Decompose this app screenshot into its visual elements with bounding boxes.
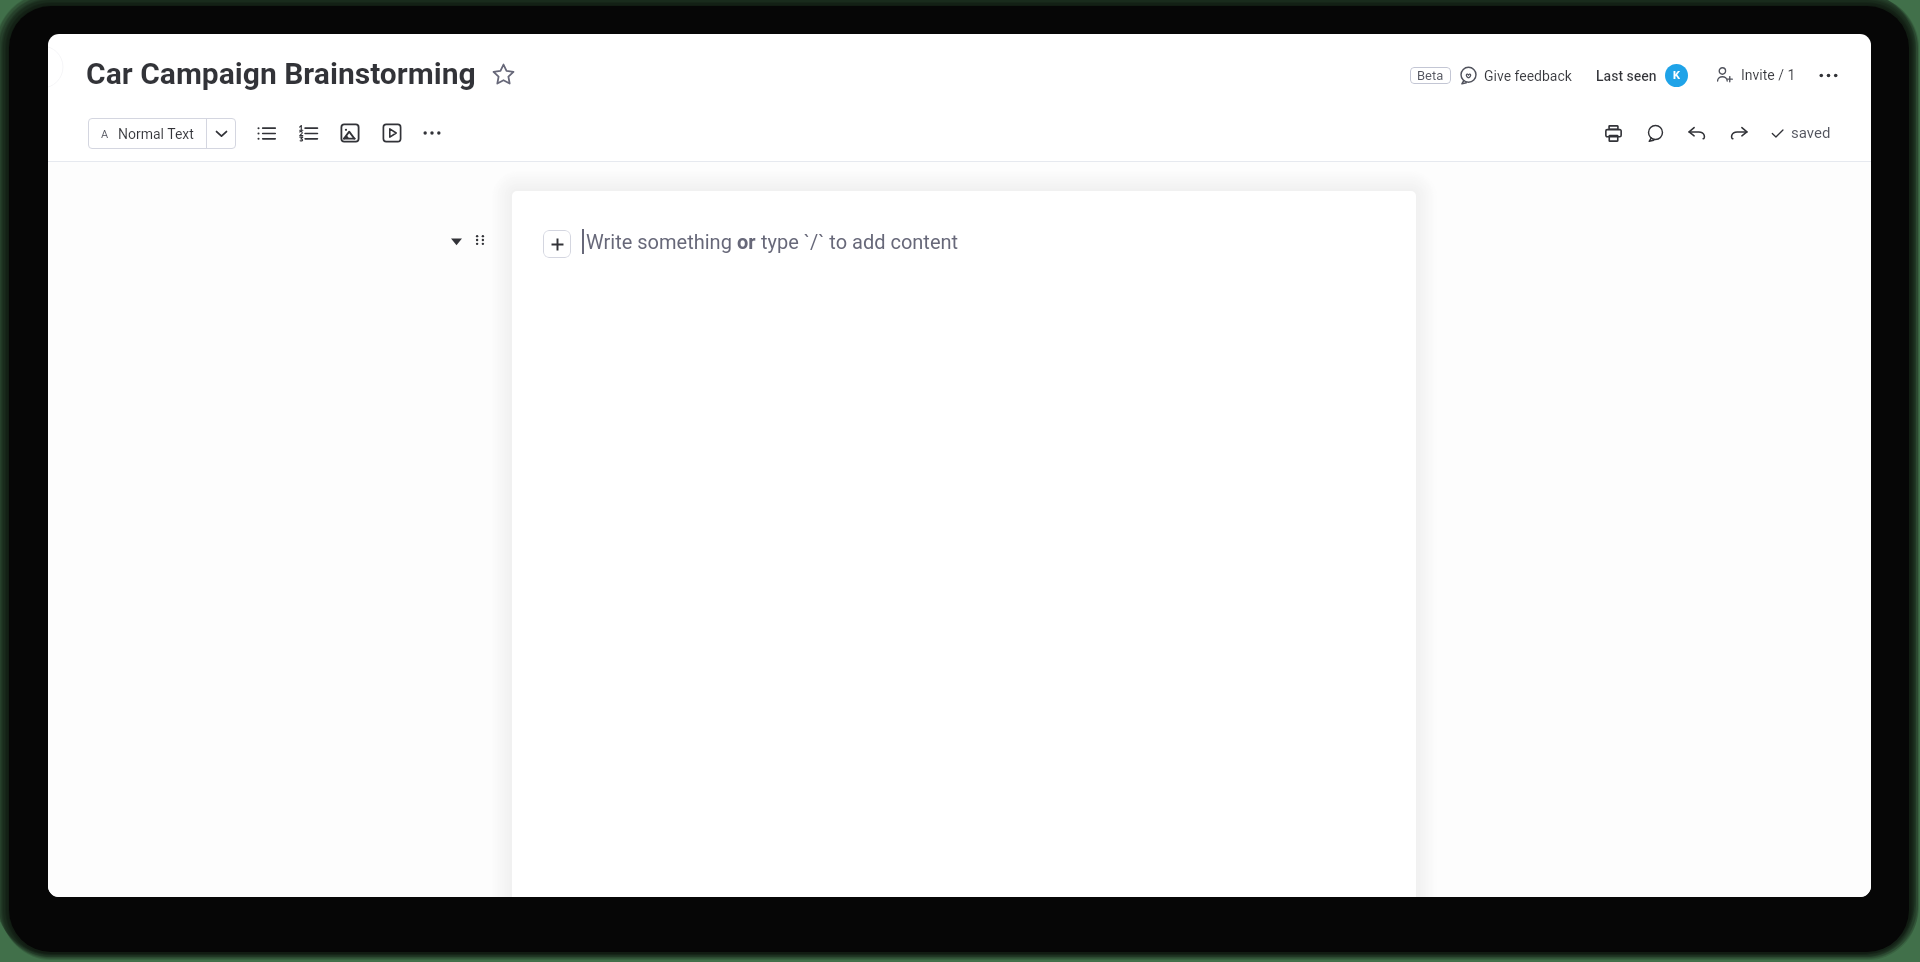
button[interactable]: Add block (543, 230, 571, 258)
button[interactable]: Insert video (378, 119, 406, 147)
staticText: Normal Text (118, 126, 194, 142)
staticText: Last seen (1596, 68, 1657, 84)
staticText: K (1673, 69, 1680, 82)
button[interactable]: Invite / 1 (1714, 61, 1798, 89)
button[interactable]: Collapse block (447, 232, 465, 250)
button[interactable]: Redo (1725, 119, 1753, 147)
button[interactable]: Undo (1683, 119, 1711, 147)
staticText: Car Campaign Brainstorming (86, 56, 476, 91)
staticText: Give feedback (1484, 68, 1572, 84)
button[interactable]: Numbered list (294, 119, 322, 147)
button[interactable]: Beta (1410, 67, 1451, 84)
button[interactable]: Comments (1641, 119, 1669, 147)
button[interactable]: Drag block (471, 231, 489, 249)
staticText: Write something (586, 230, 737, 253)
button[interactable]: Last seen (1596, 60, 1688, 91)
staticText: A (101, 128, 109, 141)
button[interactable]: A (88, 118, 236, 149)
button[interactable]: Give feedback (1458, 61, 1574, 90)
button[interactable]: Print (1599, 119, 1627, 147)
button[interactable]: Bulleted list (252, 119, 280, 147)
button[interactable]: saved (1771, 120, 1831, 146)
button[interactable]: More tools (418, 119, 446, 147)
button[interactable]: Add to favorites (489, 60, 517, 88)
staticText: Invite / 1 (1741, 67, 1796, 83)
staticText: type `/` to add content (756, 230, 959, 253)
staticText: saved (1791, 124, 1831, 142)
button[interactable]: Insert image (336, 119, 364, 147)
staticText: Beta (1417, 68, 1444, 83)
staticText: or (737, 230, 756, 253)
button[interactable]: More options (1812, 59, 1844, 91)
